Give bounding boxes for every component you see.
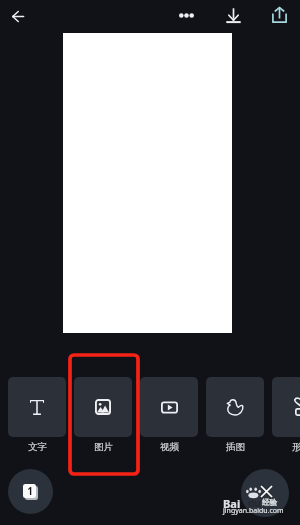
staticText: 文字 (28, 441, 47, 453)
staticText: 图片 (94, 441, 113, 453)
button[interactable]: Back (5, 4, 30, 29)
staticText: 1 (27, 484, 33, 498)
button[interactable]: More options (174, 3, 199, 28)
button[interactable]: 图片 (74, 377, 132, 437)
button[interactable]: 视频 (140, 377, 198, 437)
button[interactable]: 形状 (272, 377, 300, 437)
button[interactable]: 插图 (206, 377, 264, 437)
staticText: 视频 (160, 441, 179, 453)
button[interactable]: Download (221, 3, 246, 28)
button[interactable]: Pages (8, 469, 53, 514)
staticText: 形状 (292, 441, 300, 453)
staticText: jingyan.baidu.com (223, 506, 284, 516)
button[interactable]: Share (267, 3, 291, 27)
staticText: Bai (223, 496, 241, 511)
staticText: 经验 (262, 498, 277, 507)
button[interactable]: Close (241, 469, 289, 517)
staticText: 插图 (226, 441, 245, 453)
staticText: du (248, 496, 261, 510)
button[interactable]: 文字 (8, 377, 66, 437)
